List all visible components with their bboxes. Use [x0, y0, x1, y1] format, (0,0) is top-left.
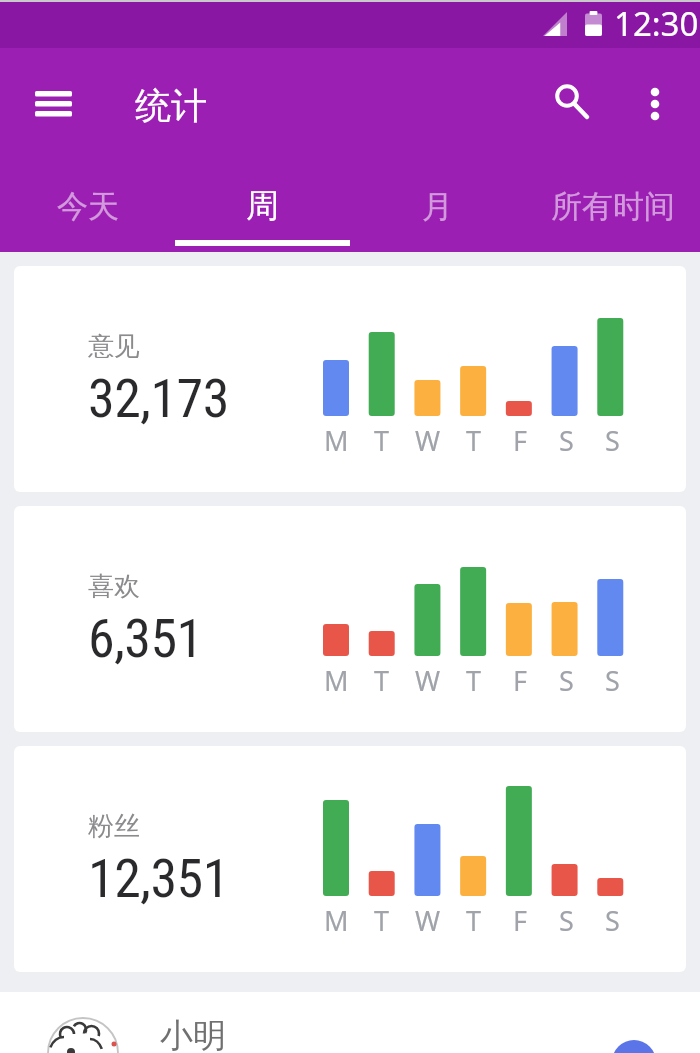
button[interactable]: 月 — [350, 160, 525, 252]
staticText: S — [605, 662, 620, 699]
button[interactable] — [47, 1017, 119, 1053]
staticText: M — [324, 422, 349, 459]
button[interactable] — [541, 72, 595, 126]
staticText: S — [559, 422, 574, 459]
staticText: M — [324, 902, 349, 939]
button[interactable]: 小明 — [0, 992, 700, 1053]
button[interactable] — [635, 72, 675, 126]
staticText: S — [559, 902, 574, 939]
staticText: 意见 — [88, 330, 140, 363]
button[interactable] — [612, 1040, 656, 1053]
staticText: F — [513, 662, 528, 699]
staticText: S — [605, 422, 620, 459]
staticText: 粉丝 — [88, 810, 140, 843]
button[interactable]: 今天 — [0, 160, 175, 252]
staticText: W — [415, 662, 441, 699]
button[interactable]: 粉丝 — [14, 746, 686, 972]
staticText: 今天 — [57, 187, 119, 226]
staticText: F — [513, 902, 528, 939]
button[interactable]: 周 — [175, 160, 350, 252]
staticText: 喜欢 — [88, 570, 140, 603]
staticText: 小明 — [160, 1015, 226, 1053]
button[interactable]: 意见 — [14, 266, 686, 492]
staticText: 统计 — [135, 83, 207, 128]
button[interactable]: 所有时间 — [525, 160, 700, 252]
staticText: F — [513, 422, 528, 459]
button[interactable] — [24, 80, 84, 128]
staticText: 所有时间 — [551, 187, 675, 226]
staticText: 月 — [422, 187, 453, 226]
staticText: 6,351 — [88, 607, 203, 670]
staticText: S — [559, 662, 574, 699]
staticText: T — [374, 902, 390, 939]
staticText: 32,173 — [88, 367, 229, 430]
staticText: T — [466, 902, 482, 939]
staticText: T — [374, 422, 390, 459]
staticText: S — [605, 902, 620, 939]
staticText: M — [324, 662, 349, 699]
button[interactable]: 喜欢 — [14, 506, 686, 732]
staticText: W — [415, 902, 441, 939]
staticText: T — [374, 662, 390, 699]
staticText: T — [466, 662, 482, 699]
staticText: 12:30 — [614, 1, 699, 46]
staticText: W — [415, 422, 441, 459]
staticText: 周 — [246, 185, 279, 227]
staticText: 12,351 — [88, 847, 229, 910]
staticText: T — [466, 422, 482, 459]
